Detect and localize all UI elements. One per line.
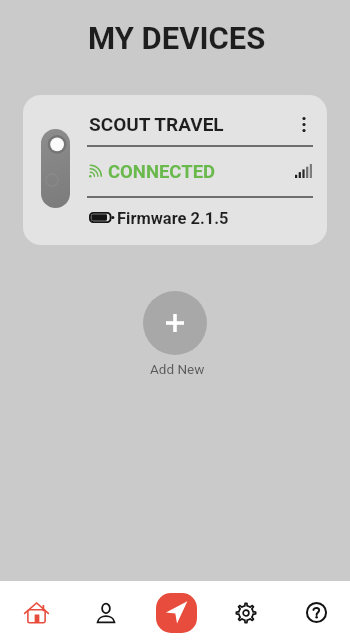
staticText: Firmware 2.1.5 [117, 209, 229, 228]
staticText: Add New [150, 361, 205, 377]
button[interactable]: Help [281, 583, 350, 640]
staticText: SCOUT TRAVEL [89, 113, 224, 135]
button[interactable]: Home [1, 583, 71, 640]
button[interactable]: SCOUT TRAVEL [23, 95, 327, 245]
staticText: CONNECTED [108, 161, 216, 183]
staticText: MY DEVICES [88, 20, 266, 56]
button[interactable]: Add New device [143, 291, 207, 355]
button[interactable]: Profile [71, 583, 141, 640]
button[interactable]: Settings [211, 583, 281, 640]
button[interactable]: More options [291, 109, 317, 141]
button[interactable]: Navigate [156, 593, 197, 633]
